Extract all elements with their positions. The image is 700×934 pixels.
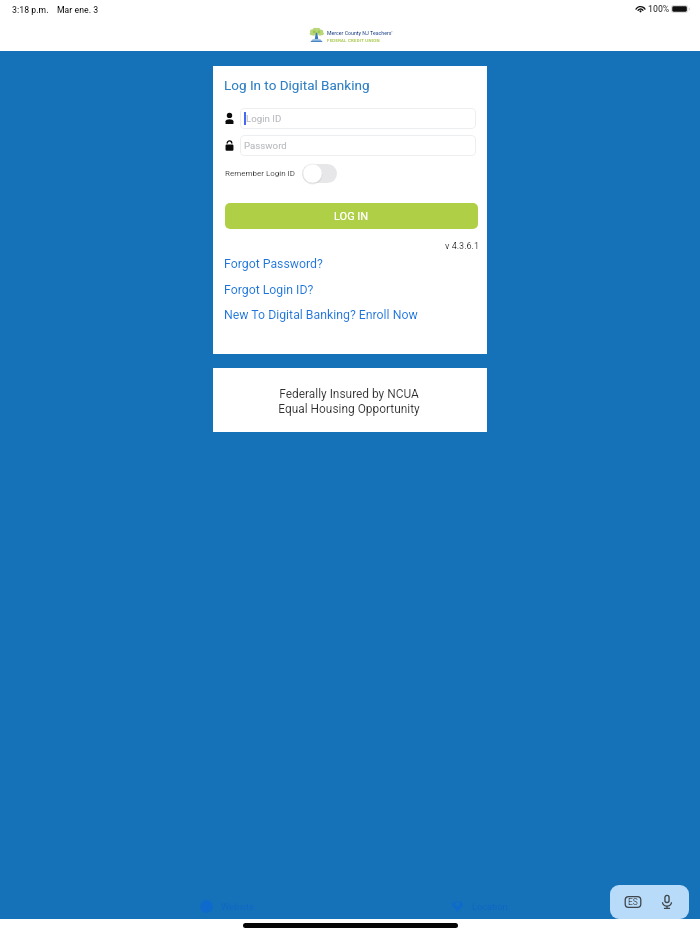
button[interactable]: Password [240, 135, 476, 156]
staticText: New To Digital Banking? Enroll Now [224, 308, 418, 322]
staticText: Log In to Digital Banking [224, 77, 370, 93]
staticText: Website [221, 901, 254, 912]
button[interactable]: Login ID [240, 108, 476, 129]
staticText: 100% [648, 4, 670, 14]
staticText: Forgot Password? [224, 257, 323, 271]
staticText: Forgot Login ID? [224, 283, 314, 297]
button[interactable]: Remember Login ID [302, 163, 337, 184]
staticText: ES [628, 897, 638, 907]
button[interactable]: Forgot Password? [224, 256, 323, 272]
staticText: Remember Login ID [225, 169, 296, 178]
staticText: Mar ene. 3 [57, 5, 99, 15]
staticText: Login ID [246, 113, 282, 124]
button[interactable]: LOG IN [225, 203, 478, 229]
staticText: 3:18 p.m. [12, 5, 49, 15]
staticText: Mercer County NJ Teachers' [327, 30, 393, 36]
staticText: FEDERAL CREDIT UNION [327, 38, 380, 43]
staticText: Password [244, 140, 287, 151]
button[interactable]: Location [350, 880, 700, 919]
staticText: Federally Insured by NCUA Equal Housing … [278, 387, 420, 416]
button[interactable]: Forgot Login ID? [224, 282, 314, 298]
staticText: Location [472, 901, 508, 912]
staticText: v 4.3.6.1 [225, 241, 479, 252]
button[interactable]: Change language to ES [624, 895, 642, 909]
button[interactable]: Voice input [658, 893, 676, 911]
button[interactable]: New To Digital Banking? Enroll Now [224, 307, 418, 323]
staticText: LOG IN [334, 210, 369, 223]
